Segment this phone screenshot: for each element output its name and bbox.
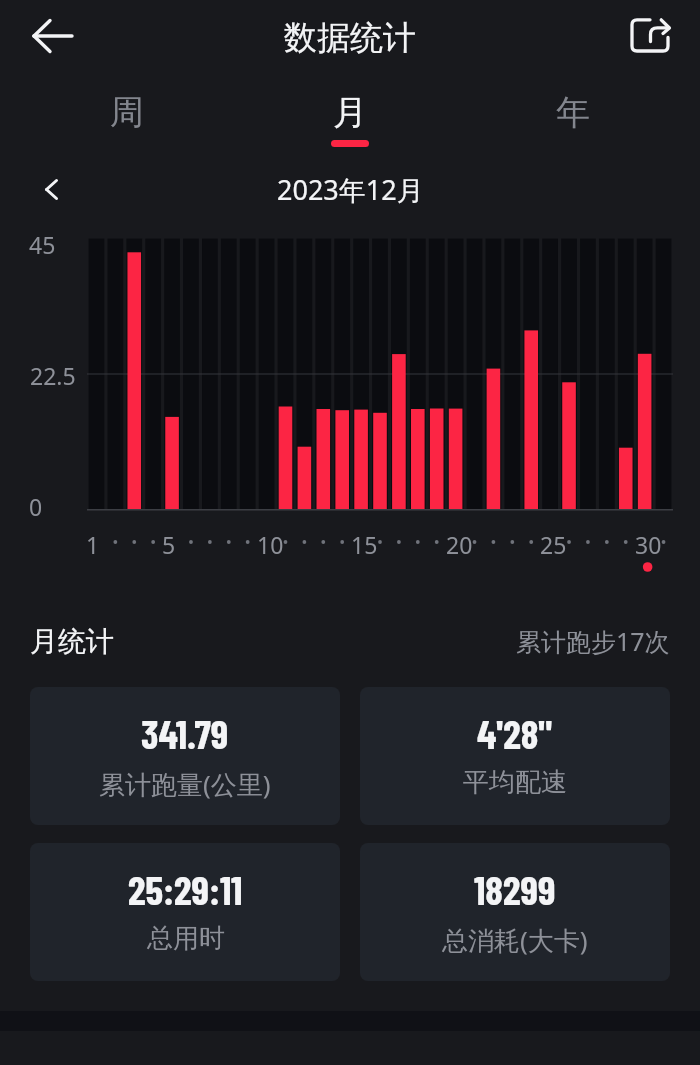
staticText: 15 — [351, 529, 378, 560]
button[interactable]: 周 — [16, 80, 238, 140]
button[interactable]: 18299 — [360, 843, 670, 981]
staticText: 数据统计 — [284, 17, 416, 59]
staticText: 0 — [29, 491, 43, 522]
staticText: 10 — [257, 529, 284, 560]
staticText: 累计跑步17次 — [516, 624, 670, 658]
button[interactable]: 341.79 — [30, 687, 340, 825]
button[interactable]: 月 — [238, 80, 461, 147]
staticText: 总用时 — [147, 922, 225, 955]
staticText: 25:29:11 — [128, 865, 243, 913]
staticText: 平均配速 — [463, 766, 567, 799]
button[interactable]: Back — [22, 6, 82, 66]
button[interactable]: 4'28" — [360, 687, 670, 825]
staticText: 2023年12月 — [277, 171, 424, 208]
button[interactable]: Share — [622, 7, 678, 63]
staticText: 月 — [333, 91, 367, 134]
button[interactable]: Previous month — [29, 167, 74, 212]
staticText: 45 — [29, 229, 56, 260]
staticText: 1 — [86, 529, 100, 560]
staticText: 总消耗(大卡) — [442, 922, 588, 958]
staticText: 22.5 — [30, 360, 76, 391]
staticText: 25 — [540, 529, 567, 560]
staticText: 月统计 — [30, 624, 114, 659]
staticText: 年 — [556, 91, 590, 134]
staticText: 20 — [446, 529, 473, 560]
staticText: 4'28" — [477, 709, 553, 757]
staticText: 周 — [110, 91, 144, 134]
staticText: 5 — [162, 529, 176, 560]
button[interactable]: 年 — [461, 80, 684, 140]
staticText: 累计跑量(公里) — [99, 766, 271, 802]
staticText: 30 — [635, 529, 662, 560]
staticText: 341.79 — [141, 709, 229, 757]
button[interactable]: 25:29:11 — [30, 843, 340, 981]
staticText: 18299 — [474, 865, 556, 913]
